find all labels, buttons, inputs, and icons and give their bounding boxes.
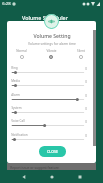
staticText: 0 bbox=[85, 94, 87, 98]
staticText: 0 bbox=[85, 134, 87, 138]
button[interactable]: Normal bbox=[7, 49, 36, 59]
staticText: System bbox=[11, 106, 22, 110]
button[interactable]: Back bbox=[9, 170, 38, 183]
staticText: 0 bbox=[85, 107, 87, 111]
staticText: Volume Scheduler bbox=[22, 14, 68, 21]
staticText: Alarm bbox=[11, 93, 20, 97]
staticText: Voice Call bbox=[11, 119, 25, 123]
staticText: Ring bbox=[11, 66, 18, 70]
staticText: 6:28 bbox=[2, 1, 11, 7]
staticText: Vibrate bbox=[46, 49, 57, 53]
staticText: Silent bbox=[77, 49, 85, 53]
staticText: Report issue or suggest feature bbox=[10, 165, 59, 169]
staticText: Notification bbox=[11, 133, 28, 137]
staticText: 0 bbox=[85, 120, 87, 124]
staticText: Volume Setting bbox=[33, 33, 71, 40]
staticText: 0 bbox=[85, 67, 87, 71]
staticText: CLOSE bbox=[47, 149, 58, 154]
button[interactable]: CLOSE bbox=[39, 146, 66, 157]
button[interactable]: Home bbox=[38, 170, 66, 183]
button[interactable]: Vibrate bbox=[36, 49, 66, 59]
staticText: Volume settings for alarm time bbox=[28, 41, 76, 45]
button[interactable]: Report issue or suggest feature bbox=[7, 163, 96, 170]
staticText: 0 bbox=[85, 80, 87, 84]
staticText: Media bbox=[11, 79, 20, 83]
button[interactable]: Silent bbox=[66, 49, 96, 59]
button[interactable]: Recents bbox=[66, 170, 94, 183]
staticText: Normal bbox=[16, 49, 27, 53]
